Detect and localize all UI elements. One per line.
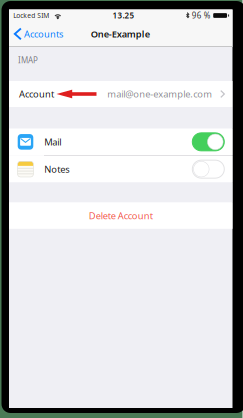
button[interactable]: Account — [9, 81, 232, 107]
staticText: 13.25 — [112, 10, 134, 21]
staticText: IMAP — [18, 55, 38, 65]
button[interactable]: Accounts — [9, 21, 69, 46]
staticText: Locked SIM — [13, 11, 49, 20]
button[interactable]: Delete Account — [9, 202, 232, 229]
staticText: One-Example — [91, 28, 150, 40]
staticText: Delete Account — [89, 209, 153, 222]
staticText: Mail — [44, 136, 61, 148]
staticText: mail@one-example.com — [107, 88, 212, 100]
staticText: Accounts — [24, 28, 63, 40]
staticText: 96 % — [192, 10, 211, 21]
staticText: Notes — [44, 163, 69, 175]
button[interactable]: Notes — [9, 156, 232, 182]
button[interactable]: Mail — [9, 128, 232, 155]
staticText: Account — [19, 88, 54, 100]
